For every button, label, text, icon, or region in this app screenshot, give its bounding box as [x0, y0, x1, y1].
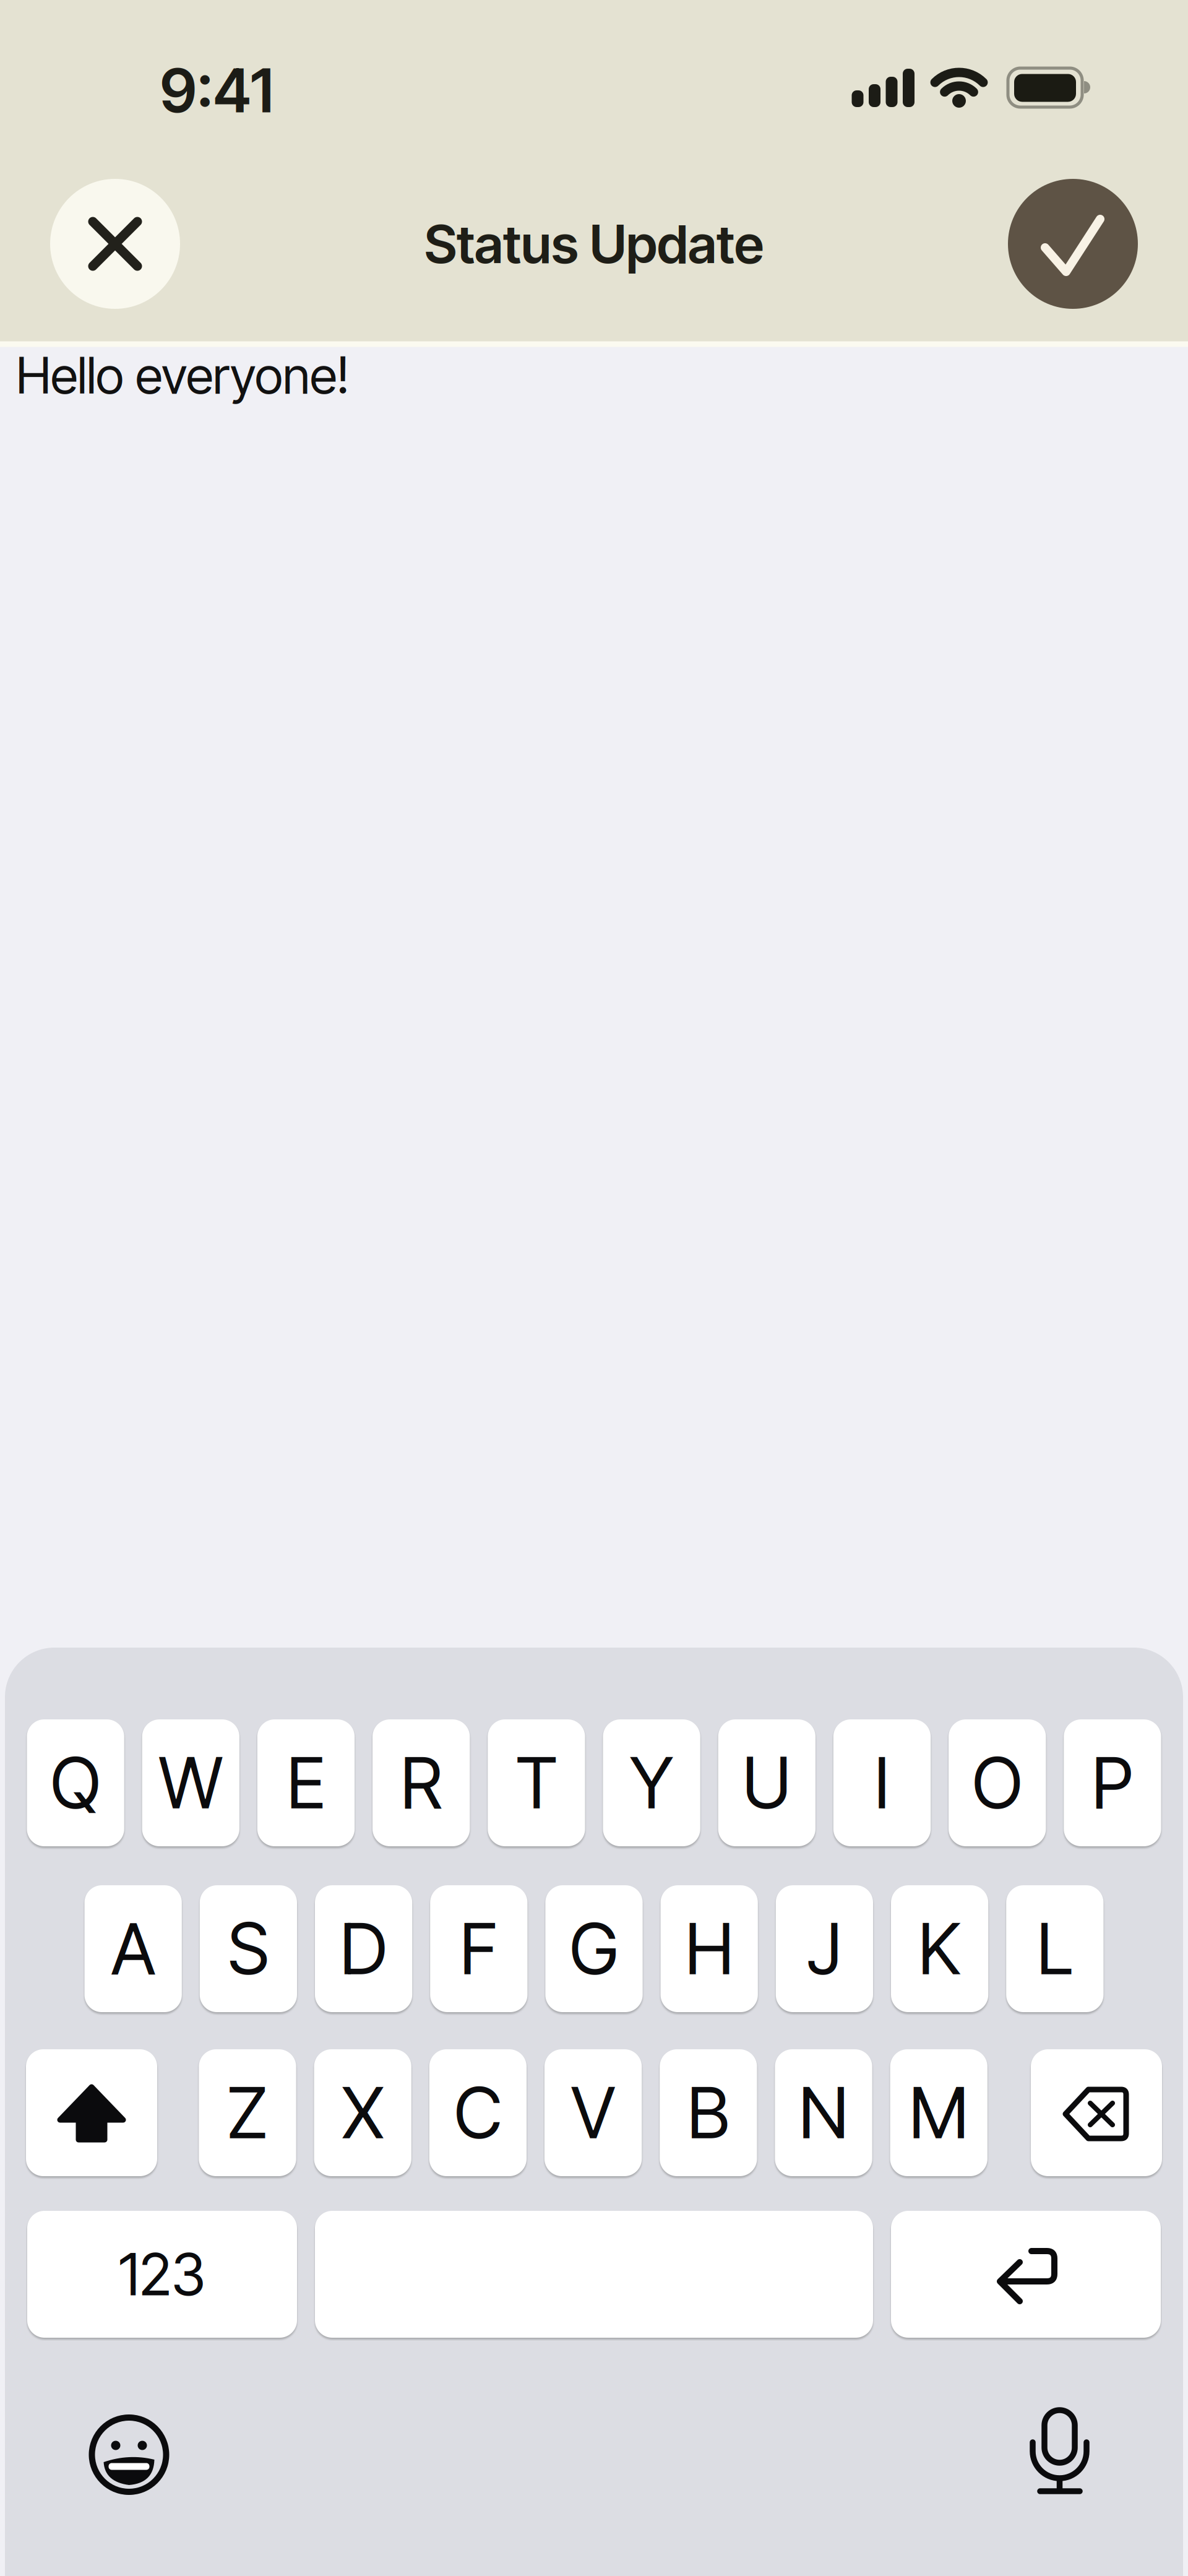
staticText: B [687, 2070, 729, 2155]
button[interactable]: P [1064, 1719, 1161, 1846]
button[interactable]: X [314, 2049, 411, 2176]
button[interactable]: W [142, 1719, 239, 1846]
staticText: C [454, 2070, 502, 2155]
button[interactable]: Post status [1008, 179, 1138, 309]
button[interactable]: I [833, 1719, 931, 1846]
button[interactable]: R [373, 1719, 470, 1846]
staticText: U [742, 1740, 791, 1825]
staticText: T [516, 1740, 557, 1825]
button[interactable]: Shift [26, 2049, 157, 2176]
staticText: Z [227, 2070, 268, 2155]
staticText: O [972, 1740, 1022, 1825]
button[interactable]: V [544, 2049, 642, 2176]
button[interactable]: H [661, 1885, 758, 2012]
button[interactable]: J [776, 1885, 873, 2012]
staticText: Hello everyone! [16, 345, 349, 406]
button[interactable]: Dictate [1016, 2403, 1103, 2502]
staticText: J [807, 1906, 842, 1991]
button[interactable]: B [660, 2049, 757, 2176]
button[interactable]: L [1006, 1885, 1103, 2012]
button[interactable]: Q [27, 1719, 124, 1846]
staticText: L [1037, 1906, 1073, 1991]
staticText: H [685, 1906, 733, 1991]
staticText: A [111, 1906, 155, 1991]
button[interactable]: N [775, 2049, 872, 2176]
button[interactable]: O [949, 1719, 1046, 1846]
button[interactable]: Z [199, 2049, 296, 2176]
staticText: Status Update [424, 212, 764, 276]
button[interactable]: Return [891, 2211, 1161, 2338]
button[interactable]: 123 [27, 2211, 297, 2338]
staticText: Q [50, 1740, 101, 1825]
staticText: P [1092, 1740, 1133, 1825]
staticText: M [909, 2070, 968, 2155]
button[interactable]: S [200, 1885, 297, 2012]
button[interactable]: Delete [1031, 2049, 1162, 2176]
button[interactable]: D [315, 1885, 412, 2012]
staticText: N [799, 2070, 848, 2155]
staticText: S [228, 1906, 269, 1991]
button[interactable]: Y [603, 1719, 700, 1846]
staticText: 9:41 [160, 54, 273, 127]
staticText: F [460, 1906, 498, 1991]
button[interactable]: M [890, 2049, 987, 2176]
button[interactable]: F [430, 1885, 527, 2012]
staticText: I [874, 1740, 890, 1825]
staticText: D [340, 1906, 387, 1991]
button[interactable]: K [891, 1885, 988, 2012]
staticText: G [570, 1906, 618, 1991]
staticText: Y [630, 1740, 673, 1825]
button[interactable]: T [488, 1719, 585, 1846]
staticText: V [571, 2070, 615, 2155]
staticText: 123 [119, 2239, 205, 2309]
button[interactable]: E [257, 1719, 355, 1846]
button[interactable]: U [718, 1719, 815, 1846]
staticText: W [159, 1740, 223, 1825]
button[interactable]: Close [50, 179, 180, 309]
button[interactable]: G [545, 1885, 643, 2012]
button[interactable]: Emoji [86, 2411, 172, 2498]
button[interactable]: C [429, 2049, 527, 2176]
staticText: X [342, 2070, 383, 2155]
staticText: E [287, 1740, 325, 1825]
button[interactable]: A [85, 1885, 182, 2012]
staticText: R [400, 1740, 442, 1825]
staticText: K [918, 1906, 961, 1991]
